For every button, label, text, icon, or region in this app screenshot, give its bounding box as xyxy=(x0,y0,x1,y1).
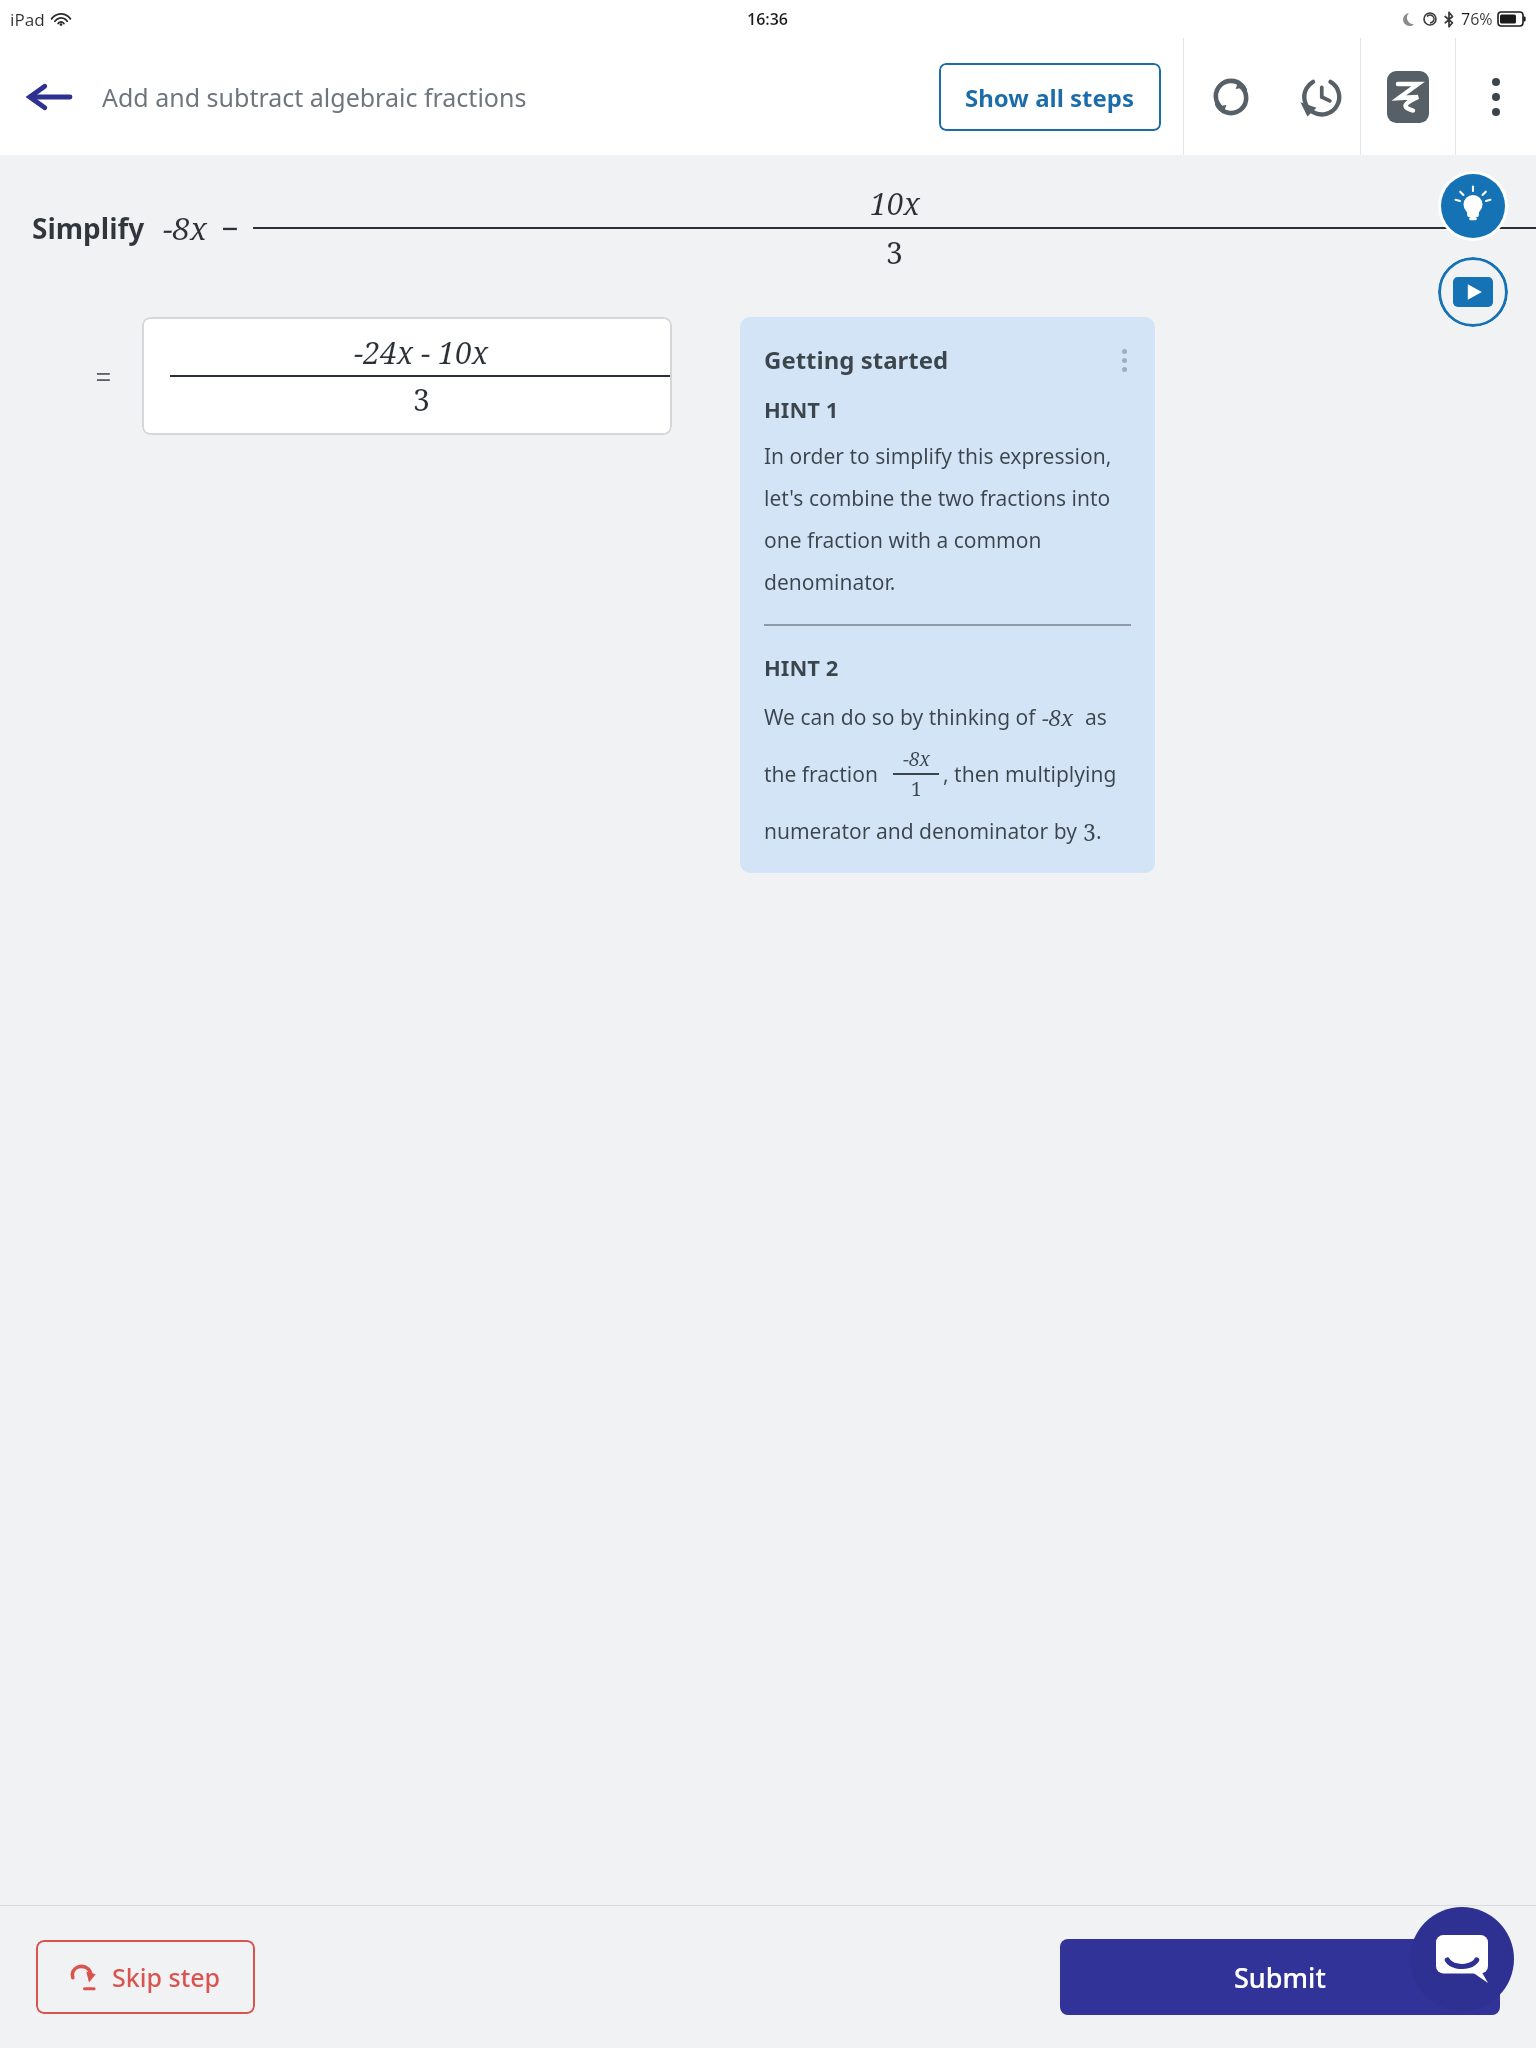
staticText: 3 xyxy=(413,379,430,420)
button[interactable]: Show all steps xyxy=(939,63,1161,131)
staticText: Show all steps xyxy=(965,81,1135,114)
staticText: the fraction xyxy=(764,760,889,789)
staticText: 10x xyxy=(870,183,920,224)
staticText: . xyxy=(1096,817,1102,846)
staticText: 3 xyxy=(1083,816,1096,847)
staticText: Submit xyxy=(1234,1959,1326,1996)
button[interactable]: Getting started xyxy=(740,317,1155,873)
staticText: 16:36 xyxy=(747,8,789,30)
staticText: Add and subtract algebraic fractions xyxy=(102,80,527,114)
button[interactable]: −24x − 10x xyxy=(142,317,672,435)
staticText: , then multiplying xyxy=(943,760,1117,789)
staticText: Simplify xyxy=(32,209,145,247)
staticText: 1 xyxy=(911,776,922,802)
button[interactable]: History xyxy=(1278,38,1360,155)
staticText: Skip step xyxy=(112,1960,221,1994)
staticText: −8x xyxy=(903,746,930,772)
staticText: Getting started xyxy=(764,343,1118,376)
button[interactable]: Reset xyxy=(1184,38,1278,155)
staticText: 76% xyxy=(1461,8,1493,30)
button[interactable]: Chat support xyxy=(1410,1907,1514,2011)
staticText: In order to simplify this expression, le… xyxy=(764,442,1131,596)
staticText: HINT 1 xyxy=(764,394,839,424)
staticText: 3 xyxy=(886,232,903,273)
button[interactable]: Submit xyxy=(1060,1939,1500,2015)
button[interactable]: Hint options xyxy=(1118,345,1131,376)
staticText: iPad xyxy=(10,8,45,31)
staticText: −8x xyxy=(163,207,207,249)
staticText: numerator and denominator by xyxy=(764,817,1083,846)
button[interactable]: Hint xyxy=(1441,174,1505,238)
staticText: −24x − 10x xyxy=(354,332,489,373)
staticText: We can do so by thinking of xyxy=(764,703,1042,732)
button[interactable]: Scratchpad xyxy=(1361,38,1455,155)
staticText: HINT 2 xyxy=(764,652,839,682)
staticText: as xyxy=(1074,703,1107,732)
staticText: = xyxy=(95,356,112,397)
button[interactable]: Back xyxy=(18,66,80,128)
button[interactable]: Watch video xyxy=(1438,257,1508,327)
staticText: −8x xyxy=(1042,702,1074,732)
button[interactable]: Skip step xyxy=(36,1940,255,2014)
staticText: − xyxy=(221,207,239,249)
button[interactable]: More options xyxy=(1456,38,1536,155)
